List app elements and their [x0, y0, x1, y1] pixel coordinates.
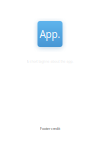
button[interactable]: App. [37, 21, 62, 47]
staticText: A short tagline about the app. [26, 59, 73, 64]
staticText: App. [39, 27, 60, 41]
staticText: Footer credit [40, 126, 60, 131]
